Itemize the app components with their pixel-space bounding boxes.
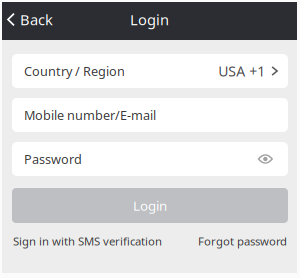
button[interactable]: Mobile number/E-mail	[12, 98, 288, 132]
button[interactable]: Show password	[250, 148, 278, 170]
staticText: Back	[20, 9, 53, 29]
staticText: Login	[130, 9, 169, 29]
button[interactable]: Sign in with SMS verification	[13, 233, 162, 249]
staticText: Login	[133, 196, 167, 215]
staticText: Password	[24, 150, 82, 168]
staticText: Sign in with SMS verification	[13, 233, 162, 249]
button[interactable]: Country / Region	[12, 54, 288, 88]
staticText: Mobile number/E-mail	[24, 106, 156, 124]
staticText: Forgot password	[198, 233, 287, 249]
button[interactable]: Forgot password	[198, 233, 287, 249]
button[interactable]: Back	[2, 2, 63, 40]
button[interactable]: Login	[12, 188, 288, 223]
staticText: USA +1	[218, 61, 265, 81]
staticText: Country / Region	[24, 62, 125, 80]
